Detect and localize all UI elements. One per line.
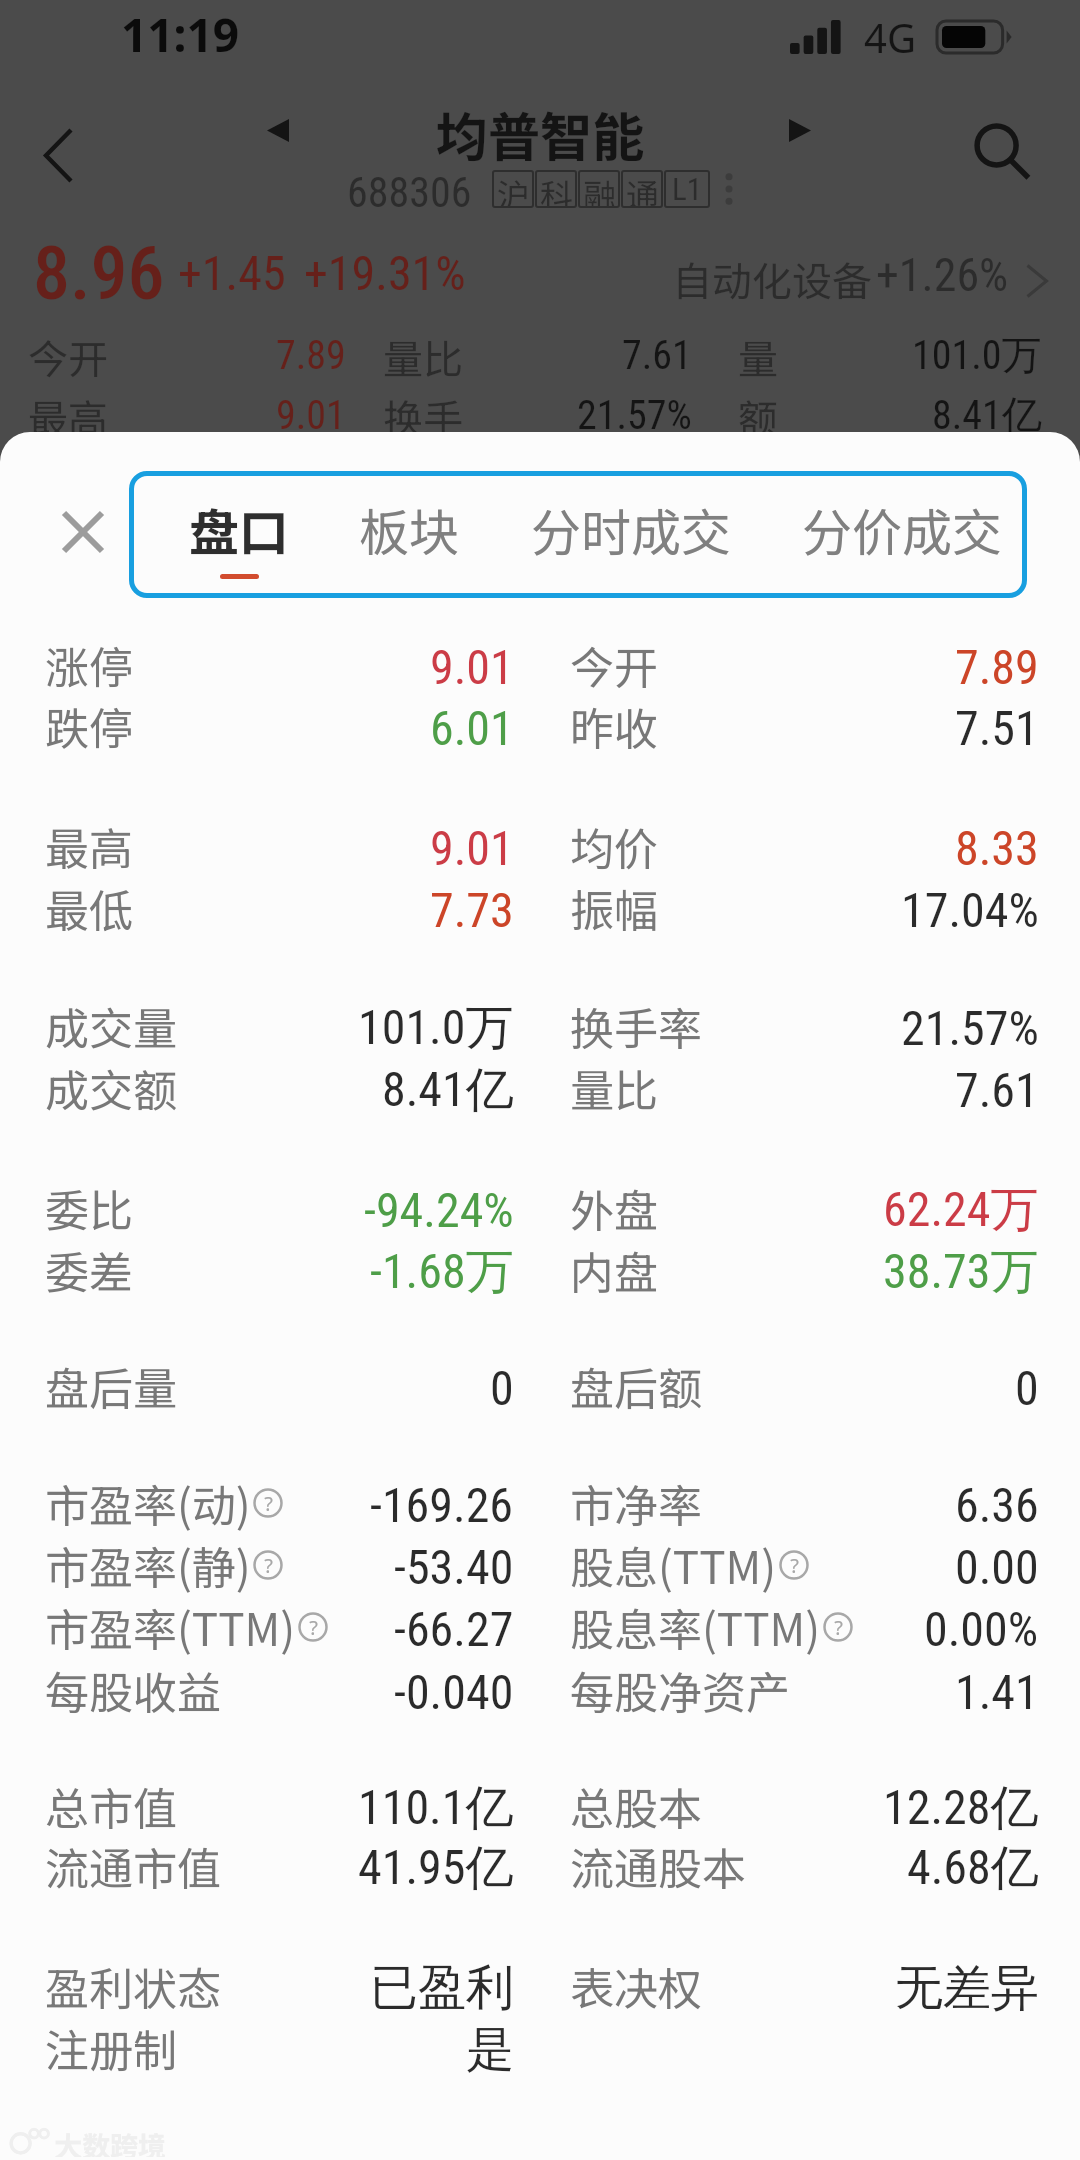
staticText: 换手 xyxy=(383,388,463,446)
staticText: -94.24% xyxy=(364,1182,514,1238)
staticText: 流通股本 xyxy=(570,1834,746,1898)
staticText: 融 xyxy=(583,170,616,208)
staticText: 8.41亿 xyxy=(382,1060,514,1120)
staticText: 8.96 xyxy=(33,230,165,317)
staticText: 股息率(TTM) xyxy=(570,1595,821,1659)
staticText: 成交量 xyxy=(45,994,177,1058)
staticText: 注册制 xyxy=(45,2016,177,2080)
staticText: 101.0万 xyxy=(358,998,514,1058)
staticText: 41.95亿 xyxy=(358,1838,514,1898)
staticText: 外盘 xyxy=(570,1176,658,1240)
staticText: ? xyxy=(790,1552,799,1579)
staticText: 昨收 xyxy=(570,694,658,758)
staticText: 7.61 xyxy=(622,332,692,379)
staticText: 最高 xyxy=(28,388,108,446)
button[interactable]: Close xyxy=(64,513,102,551)
staticText: 8.33 xyxy=(955,820,1039,876)
staticText: 换手率 xyxy=(570,994,702,1058)
staticText: 分时成交 xyxy=(531,493,731,565)
staticText: 无差异 xyxy=(895,1958,1039,2018)
staticText: 最高 xyxy=(45,814,133,878)
staticText: 盈利状态 xyxy=(45,1954,221,2018)
staticText: 量比 xyxy=(570,1056,658,1120)
staticText: 6.01 xyxy=(430,700,514,756)
button[interactable]: 盘口 xyxy=(169,481,309,591)
staticText: 每股净资产 xyxy=(570,1658,790,1722)
staticText: 盘后额 xyxy=(570,1354,702,1418)
staticText: 内盘 xyxy=(570,1238,658,1302)
staticText: 4G xyxy=(864,10,916,64)
staticText: ? xyxy=(264,1552,273,1579)
button[interactable]: 分价成交 xyxy=(782,481,1022,577)
staticText: 4.68亿 xyxy=(907,1838,1039,1898)
staticText: 股息(TTM) xyxy=(570,1533,777,1597)
staticText: 大数跨境 xyxy=(54,2125,167,2157)
staticText: 总股本 xyxy=(570,1774,702,1838)
staticText: 688306 xyxy=(347,168,472,217)
staticText: 每股收益 xyxy=(45,1658,221,1722)
staticText: ? xyxy=(309,1614,318,1641)
staticText: 7.61 xyxy=(955,1062,1039,1118)
staticText: 最低 xyxy=(45,876,133,940)
staticText: -66.27 xyxy=(394,1601,514,1657)
staticText: 7.51 xyxy=(955,700,1039,756)
staticText: +19.31% xyxy=(304,245,466,301)
staticText: 振幅 xyxy=(570,876,658,940)
staticText: 101.0万 xyxy=(912,330,1042,380)
staticText: 9.01 xyxy=(276,392,346,439)
staticText: 分价成交 xyxy=(802,493,1002,565)
staticText: 110.1亿 xyxy=(358,1778,514,1838)
staticText: 21.57% xyxy=(577,392,692,439)
staticText: 今开 xyxy=(570,633,658,697)
button[interactable]: Back xyxy=(44,128,73,183)
staticText: 0.00 xyxy=(955,1539,1039,1595)
staticText: 9.01 xyxy=(430,820,514,876)
staticText: 表决权 xyxy=(570,1954,702,2018)
staticText: ? xyxy=(834,1614,843,1641)
staticText: 涨停 xyxy=(45,633,133,697)
staticText: 7.89 xyxy=(276,332,346,379)
staticText: 9.01 xyxy=(430,639,514,695)
staticText: 1.41 xyxy=(955,1664,1039,1720)
staticText: 通 xyxy=(626,170,659,208)
staticText: 均普智能 xyxy=(436,96,645,171)
staticText: 市盈率(TTM) xyxy=(45,1595,296,1659)
button[interactable]: Search xyxy=(972,122,1032,182)
staticText: 总市值 xyxy=(45,1774,177,1838)
staticText: -0.040 xyxy=(394,1664,514,1720)
staticText: 今开 xyxy=(28,328,108,386)
staticText: 17.04% xyxy=(901,882,1039,938)
staticText: 板块 xyxy=(359,493,459,565)
staticText: 盘后量 xyxy=(45,1354,177,1418)
staticText: 0.00% xyxy=(924,1601,1039,1657)
staticText: ? xyxy=(264,1490,273,1517)
staticText: 额 xyxy=(738,388,778,446)
staticText: -1.68万 xyxy=(370,1242,514,1302)
staticText: -169.26 xyxy=(370,1477,514,1533)
staticText: 市盈率(静) xyxy=(45,1533,251,1597)
staticText: 6.36 xyxy=(955,1477,1039,1533)
button[interactable]: 板块 xyxy=(339,481,479,577)
staticText: 11:19 xyxy=(121,3,240,66)
staticText: 沪 xyxy=(497,170,530,208)
button[interactable]: 分时成交 xyxy=(511,481,751,577)
staticText: +1.45 xyxy=(178,245,286,301)
staticText: 市净率 xyxy=(570,1471,702,1535)
staticText: 是 xyxy=(466,2020,514,2080)
staticText: 委比 xyxy=(45,1176,133,1240)
staticText: 市盈率(动) xyxy=(45,1471,251,1535)
staticText: 0 xyxy=(1015,1360,1039,1416)
staticText: +1.26% xyxy=(876,248,1009,302)
staticText: 成交额 xyxy=(45,1056,177,1120)
staticText: 62.24万 xyxy=(883,1180,1039,1240)
staticText: 8.41亿 xyxy=(932,390,1042,440)
staticText: -53.40 xyxy=(394,1539,514,1595)
staticText: 盘口 xyxy=(189,493,289,565)
staticText: 跌停 xyxy=(45,694,133,758)
staticText: 流通市值 xyxy=(45,1834,221,1898)
staticText: 21.57% xyxy=(901,1000,1039,1056)
staticText: 均价 xyxy=(570,814,658,878)
staticText: 科 xyxy=(540,170,573,208)
staticText: 委差 xyxy=(45,1238,133,1302)
staticText: 7.89 xyxy=(955,639,1039,695)
